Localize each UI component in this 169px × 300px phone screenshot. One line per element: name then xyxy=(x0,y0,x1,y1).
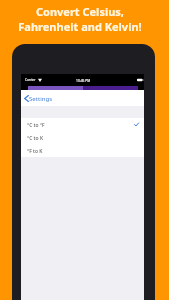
staticText: 10:45 PM xyxy=(76,78,91,82)
staticText: °C to K xyxy=(27,135,44,142)
button[interactable]: °C to K xyxy=(21,131,144,144)
button[interactable]: °F to K xyxy=(21,144,144,157)
staticText: Settings xyxy=(29,94,53,102)
other: Selected xyxy=(134,122,139,127)
staticText: °F to K xyxy=(27,148,43,155)
staticText: °C to °F xyxy=(27,122,45,129)
button[interactable]: °C to °F xyxy=(21,118,144,131)
staticText: Convert Celsius, Fahrenheit and Kelvin! xyxy=(0,4,160,34)
staticText: Carrier xyxy=(25,78,36,82)
button[interactable]: Settings xyxy=(21,90,144,106)
